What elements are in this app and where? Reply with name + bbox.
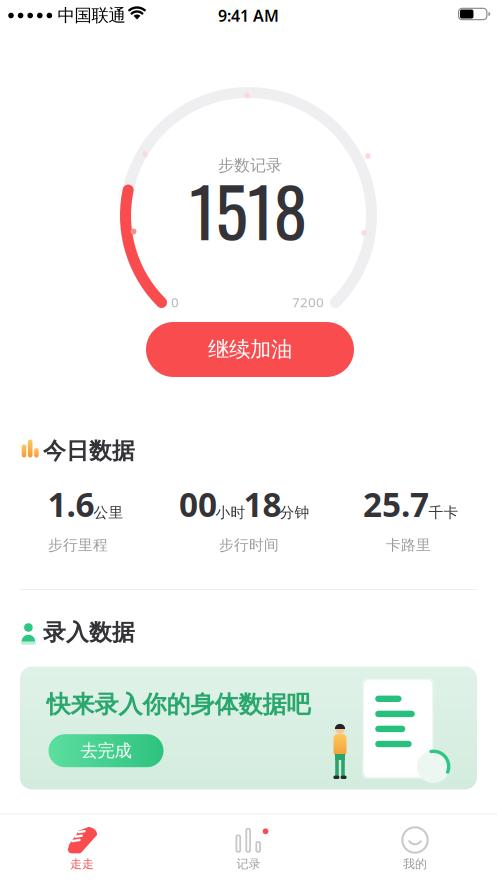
staticText: 步行时间	[219, 536, 279, 554]
staticText: 快来录入你的身体数据吧	[46, 690, 310, 719]
staticText: 分钟	[279, 503, 309, 521]
staticText: 走走	[70, 857, 94, 871]
staticText: 18	[243, 482, 281, 526]
staticText: 公里	[93, 503, 123, 521]
staticText: 步行里程	[48, 536, 108, 554]
staticText: 继续加油	[208, 336, 292, 363]
button[interactable]: 我的	[345, 815, 485, 879]
staticText: 步数记录	[218, 156, 282, 175]
button[interactable]: 继续加油	[146, 322, 354, 377]
staticText: 1.6	[47, 482, 94, 526]
staticText: 录入数据	[43, 619, 135, 646]
button[interactable]: 记录	[178, 815, 318, 879]
staticText: 1518	[189, 159, 307, 260]
staticText: 今日数据	[43, 437, 135, 465]
button[interactable]: 走走	[12, 815, 152, 879]
staticText: 记录	[236, 857, 260, 871]
staticText: 00	[179, 482, 217, 526]
staticText: 中国联通	[57, 5, 125, 26]
staticText: 去完成	[80, 740, 131, 761]
staticText: 千卡	[428, 503, 458, 521]
button[interactable]: 去完成	[48, 734, 163, 767]
staticText: 0	[171, 293, 179, 311]
staticText: 7200	[292, 293, 324, 311]
staticText: 卡路里	[386, 536, 431, 554]
staticText: 25.7	[363, 482, 429, 526]
staticText: 小时	[215, 503, 245, 521]
staticText: 9:41 AM	[218, 5, 279, 26]
staticText: 我的	[403, 857, 427, 871]
